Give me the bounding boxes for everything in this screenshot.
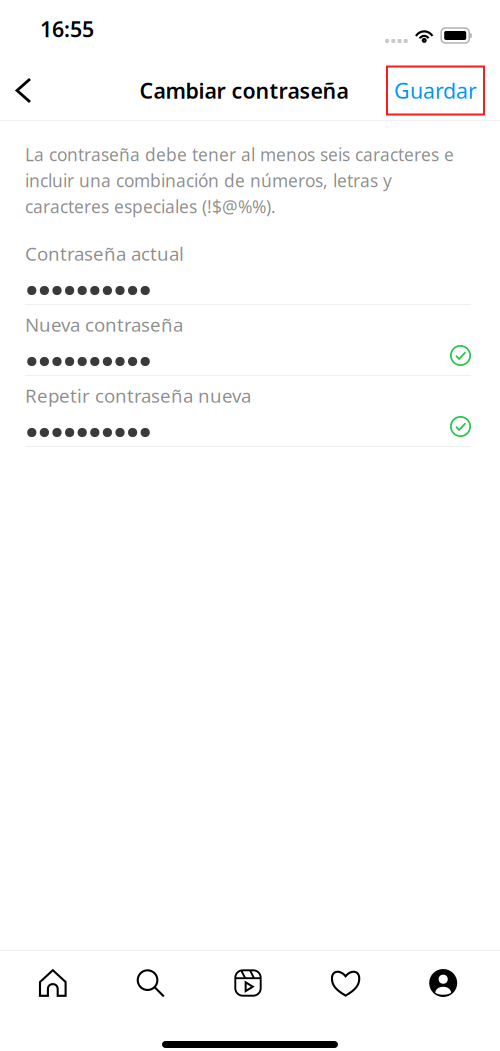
staticText: Repetir contraseña nueva [25,383,251,408]
button[interactable]: Guardar [386,65,485,115]
button[interactable]: Reels [199,960,297,1006]
button[interactable]: Home [4,960,102,1006]
staticText: Contraseña actual [25,241,184,266]
button[interactable]: Search [102,960,199,1006]
staticText: Guardar [394,76,477,105]
staticText: Cambiar contraseña [139,76,348,105]
button[interactable]: Activity [297,960,394,1006]
staticText: La contraseña debe tener al menos seis c… [25,143,454,218]
button[interactable]: Profile [394,960,492,1006]
staticText: Nueva contraseña [25,312,183,337]
staticText: 16:55 [40,15,94,43]
button[interactable]: Back [0,64,47,116]
